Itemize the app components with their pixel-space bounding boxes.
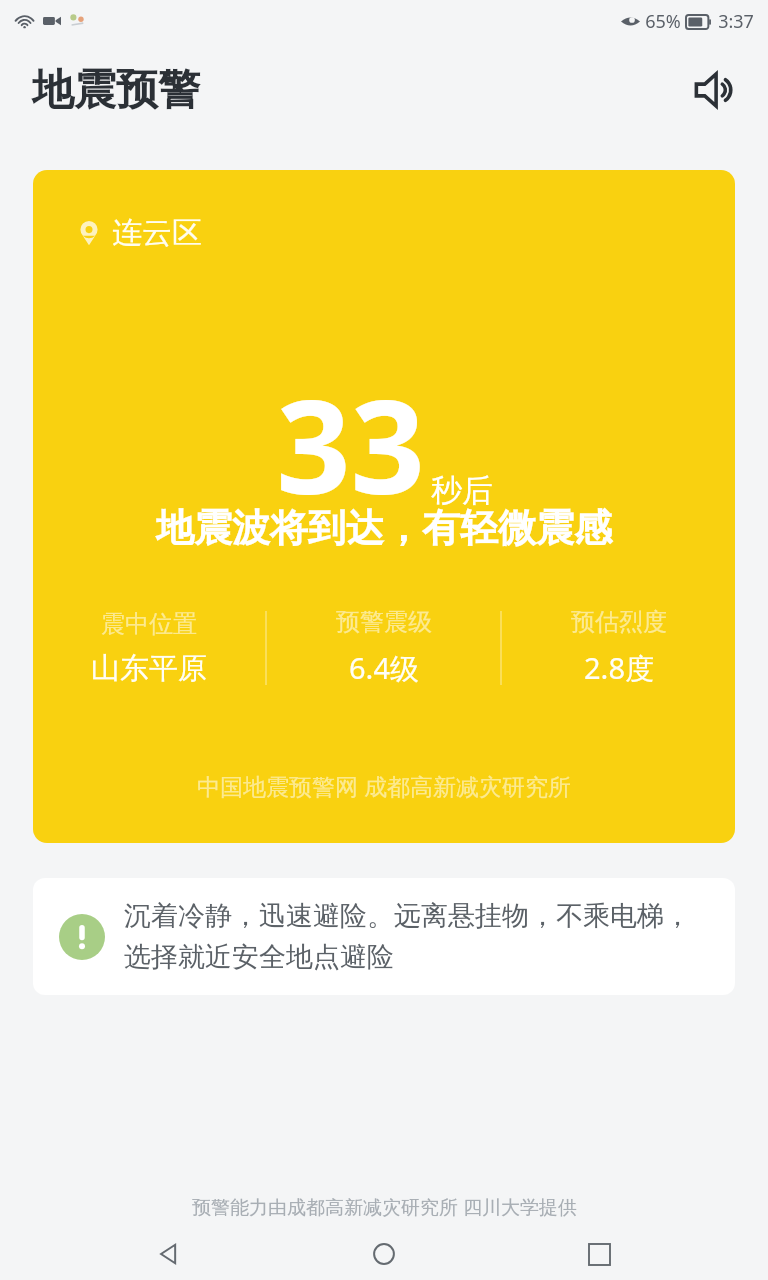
staticText: 预警能力由成都高新减灾研究所 四川大学提供 bbox=[192, 1194, 577, 1220]
staticText: 2.8度 bbox=[584, 648, 654, 688]
staticText: 6.4级 bbox=[349, 648, 419, 688]
staticText: 秒后 bbox=[431, 471, 493, 510]
staticText: 中国地震预警网 成都高新减灾研究所 bbox=[197, 770, 571, 801]
staticText: 震中位置 bbox=[101, 609, 197, 639]
button[interactable]: Recent apps bbox=[576, 1231, 622, 1277]
staticText: 65% bbox=[645, 9, 681, 34]
staticText: 地震预警 bbox=[32, 64, 200, 117]
button[interactable]: Sound bbox=[686, 62, 742, 118]
button[interactable]: 连云区 bbox=[33, 170, 735, 843]
staticText: 33 bbox=[276, 355, 425, 532]
staticText: 山东平原 bbox=[91, 650, 207, 687]
staticText: 预警震级 bbox=[336, 607, 432, 637]
staticText: 地震波将到达，有轻微震感 bbox=[156, 504, 612, 552]
button[interactable]: Home bbox=[361, 1231, 407, 1277]
staticText: 沉着冷静，迅速避险。远离悬挂物，不乘电梯，选择就近安全地点避险 bbox=[124, 899, 717, 974]
button[interactable]: 沉着冷静，迅速避险。远离悬挂物，不乘电梯，选择就近安全地点避险 bbox=[33, 878, 735, 995]
staticText: 连云区 bbox=[112, 214, 202, 252]
staticText: 3:37 bbox=[718, 9, 754, 34]
staticText: 预估烈度 bbox=[571, 607, 667, 637]
button[interactable]: Back bbox=[146, 1231, 192, 1277]
